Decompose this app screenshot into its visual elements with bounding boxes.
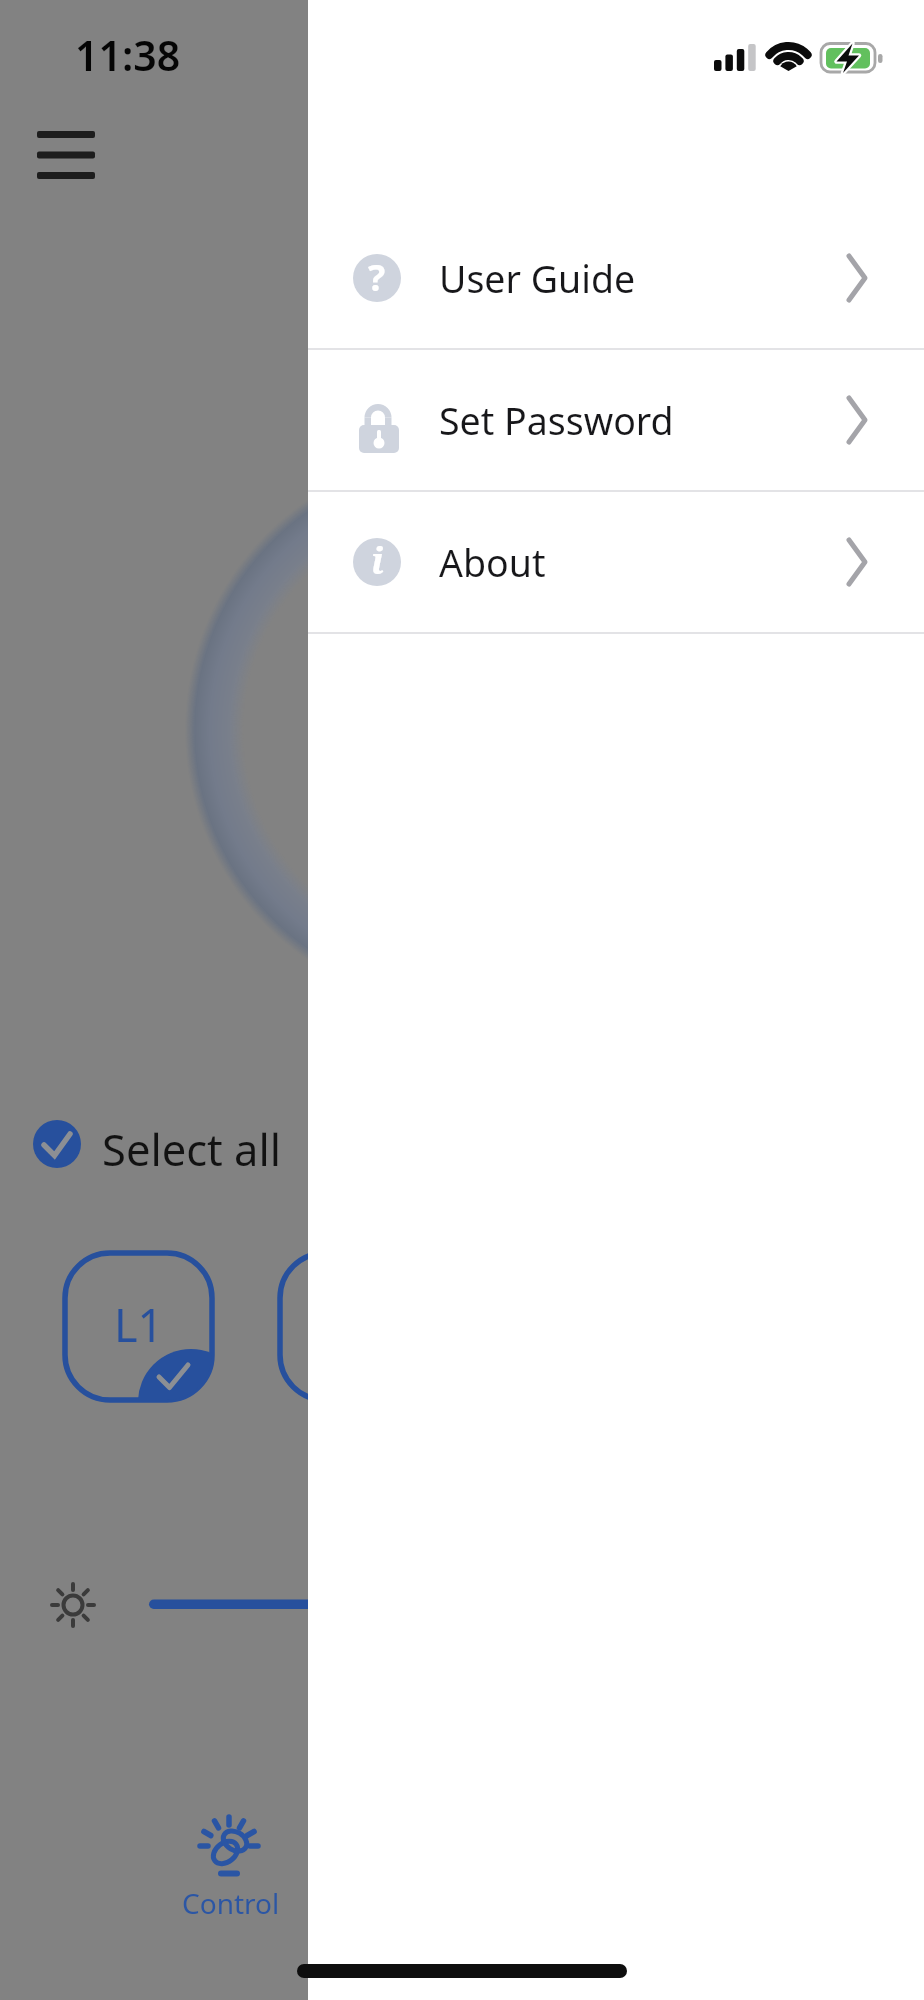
staticText: Select all <box>102 1119 281 1169</box>
staticText: L1 <box>114 1294 164 1355</box>
staticText: i <box>371 536 384 584</box>
button[interactable]: L1 <box>62 1250 215 1403</box>
button[interactable] <box>37 131 95 179</box>
staticText: Set Password <box>439 395 846 446</box>
staticText: 11:38 <box>75 27 181 83</box>
staticText: About <box>439 537 846 588</box>
button[interactable]: Set Password <box>308 350 924 490</box>
button[interactable]: Select all <box>33 1119 281 1169</box>
button[interactable]: i <box>308 492 924 632</box>
button[interactable]: Control <box>155 1808 307 1922</box>
staticText: Control <box>182 1884 280 1922</box>
staticText: ? <box>368 253 386 301</box>
staticText: User Guide <box>439 253 846 304</box>
button[interactable]: ? <box>308 208 924 348</box>
